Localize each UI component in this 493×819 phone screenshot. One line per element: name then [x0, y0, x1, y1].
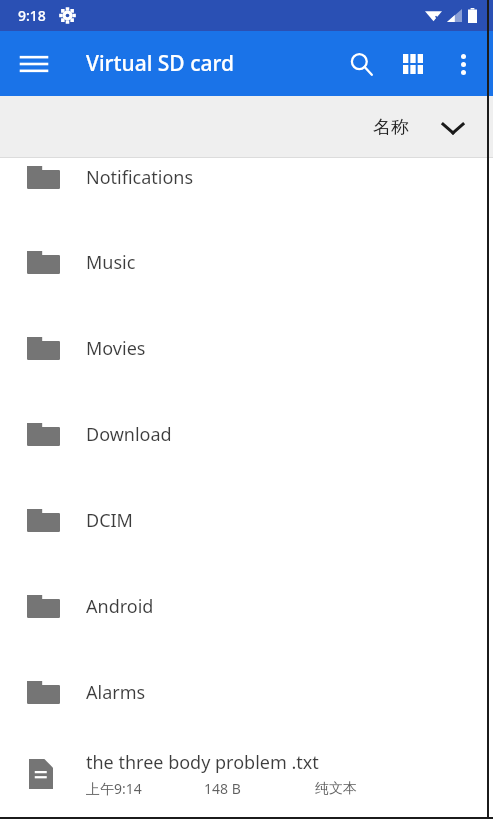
staticText: 9:18 — [18, 6, 46, 25]
staticText: Music — [86, 250, 136, 275]
button[interactable]: 名称 — [0, 96, 493, 158]
staticText: Movies — [86, 336, 146, 361]
button[interactable]: the three body problem .txt — [0, 735, 493, 813]
button[interactable]: Alarms — [0, 649, 493, 735]
button[interactable]: Download — [0, 391, 493, 477]
button[interactable]: DCIM — [0, 477, 493, 563]
staticText: DCIM — [86, 508, 133, 533]
button[interactable]: Open navigation drawer — [10, 40, 58, 88]
staticText: Virtual SD card — [86, 49, 234, 78]
button[interactable]: Notifications — [0, 158, 493, 219]
staticText: 纯文本 — [315, 780, 357, 798]
staticText: Alarms — [86, 680, 146, 705]
button[interactable]: Search — [335, 38, 387, 90]
staticText: 名称 — [373, 116, 409, 139]
staticText: Android — [86, 594, 154, 619]
button[interactable]: More options — [439, 40, 487, 88]
button[interactable]: Switch to grid view — [387, 38, 439, 90]
button[interactable]: Movies — [0, 305, 493, 391]
button[interactable]: Music — [0, 219, 493, 305]
staticText: Download — [86, 422, 172, 447]
staticText: 上午9:14 — [86, 779, 204, 798]
staticText: 148 B — [204, 779, 315, 798]
staticText: Notifications — [86, 165, 194, 190]
staticText: the three body problem .txt — [86, 750, 319, 775]
button[interactable]: Android — [0, 563, 493, 649]
